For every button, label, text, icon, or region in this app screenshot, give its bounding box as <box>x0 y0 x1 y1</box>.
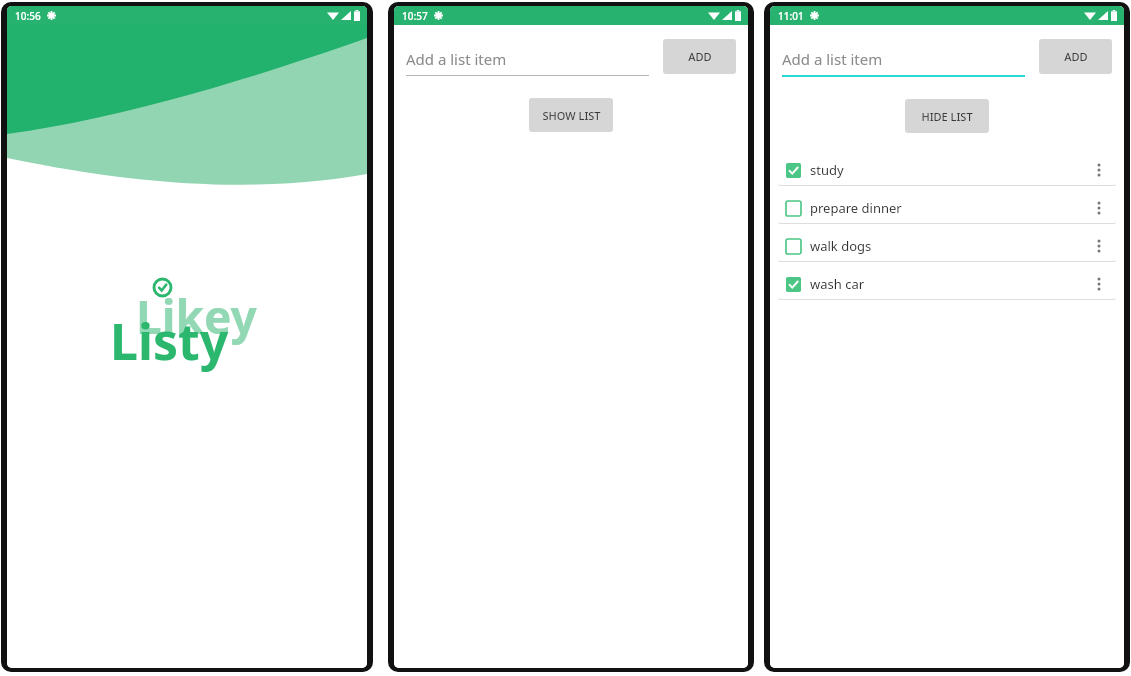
staticText: 11:01 <box>778 9 804 23</box>
button[interactable]: Checked <box>786 163 801 178</box>
button[interactable]: Unchecked <box>778 231 1116 261</box>
button[interactable]: More options <box>1090 270 1108 298</box>
staticText: ADD <box>1064 49 1088 64</box>
staticText: study <box>810 161 844 179</box>
button[interactable]: Add a list item <box>782 39 1025 77</box>
button[interactable]: More options <box>1090 156 1108 184</box>
button[interactable]: ADD <box>663 39 736 74</box>
staticText: prepare dinner <box>810 199 902 217</box>
staticText: Add a list item <box>406 49 507 69</box>
staticText: 10:56 <box>15 9 41 23</box>
button[interactable]: More options <box>1090 194 1108 222</box>
staticText: HIDE LIST <box>921 109 973 124</box>
staticText: walk dogs <box>810 237 872 255</box>
staticText: Likey <box>136 285 257 348</box>
button[interactable]: Unchecked <box>778 193 1116 223</box>
button[interactable]: ADD <box>1039 39 1112 74</box>
staticText: ADD <box>688 49 712 64</box>
button[interactable]: HIDE LIST <box>905 99 989 133</box>
staticText: wash car <box>810 275 865 293</box>
staticText: SHOW LIST <box>542 108 601 123</box>
button[interactable]: Checked <box>778 155 1116 185</box>
button[interactable]: Add a list item <box>406 39 649 76</box>
button[interactable]: More options <box>1090 232 1108 260</box>
button[interactable]: Checked <box>786 277 801 292</box>
button[interactable]: Checked <box>778 269 1116 299</box>
button[interactable]: Unchecked <box>786 239 801 254</box>
button[interactable]: SHOW LIST <box>529 98 613 132</box>
staticText: Add a list item <box>782 49 883 69</box>
staticText: Listy <box>110 307 229 375</box>
button[interactable]: Unchecked <box>786 201 801 216</box>
staticText: 10:57 <box>402 9 428 23</box>
